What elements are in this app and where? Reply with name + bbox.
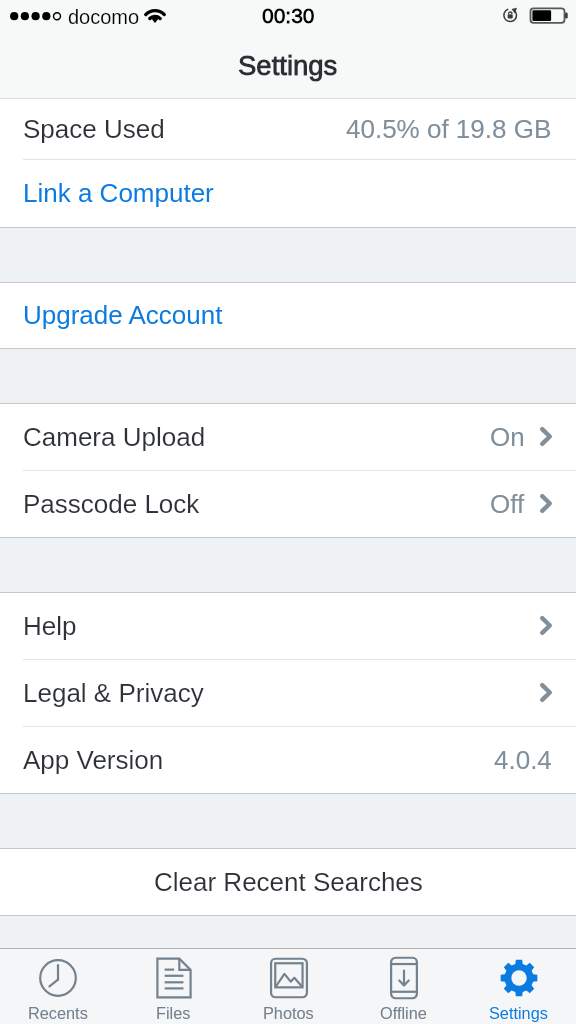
staticText: Off: [490, 489, 525, 518]
button[interactable]: Camera Upload: [0, 404, 576, 470]
staticText: Offline: [380, 1004, 427, 1022]
staticText: Settings: [489, 1004, 548, 1022]
button[interactable]: Space Used: [0, 99, 576, 159]
staticText: Help: [23, 611, 77, 640]
staticText: On: [490, 422, 525, 451]
button[interactable]: Settings: [461, 949, 576, 1024]
button[interactable]: Offline: [346, 949, 461, 1024]
staticText: Link a Computer: [23, 178, 214, 207]
button[interactable]: Clear Recent Searches: [0, 849, 576, 915]
staticText: Upgrade Account: [23, 300, 223, 329]
staticText: Photos: [263, 1004, 314, 1022]
staticText: Space Used: [23, 114, 165, 143]
button[interactable]: Help: [0, 593, 576, 659]
staticText: App Version: [23, 745, 164, 774]
button[interactable]: Passcode Lock: [0, 471, 576, 537]
button[interactable]: Recents: [0, 949, 116, 1024]
button[interactable]: Legal & Privacy: [0, 660, 576, 726]
staticText: 00:30: [262, 4, 315, 27]
button[interactable]: Files: [116, 949, 231, 1024]
staticText: Legal & Privacy: [23, 678, 204, 707]
staticText: Files: [156, 1004, 191, 1022]
button[interactable]: Upgrade Account: [0, 283, 576, 348]
button[interactable]: Photos: [231, 949, 346, 1024]
staticText: Camera Upload: [23, 422, 206, 451]
staticText: 4.0.4: [494, 745, 552, 774]
staticText: docomo: [68, 6, 140, 28]
staticText: Clear Recent Searches: [154, 867, 423, 896]
staticText: Settings: [238, 50, 338, 81]
button[interactable]: App Version: [0, 727, 576, 793]
staticText: 40.5% of 19.8 GB: [346, 114, 552, 143]
button[interactable]: Link a Computer: [0, 160, 576, 227]
staticText: Passcode Lock: [23, 489, 200, 518]
staticText: Recents: [28, 1004, 88, 1022]
